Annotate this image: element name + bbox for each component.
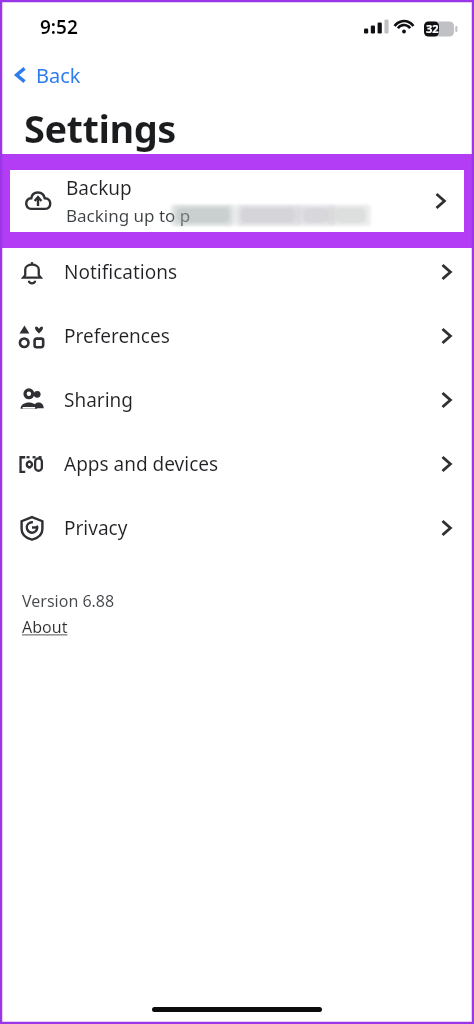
staticText: Sharing bbox=[64, 387, 418, 413]
staticText: Apps and devices bbox=[64, 451, 418, 477]
staticText: Backing up to p bbox=[66, 204, 191, 227]
button[interactable]: Notifications bbox=[0, 240, 474, 304]
other: Privacy bbox=[19, 515, 45, 541]
other: Notifications bbox=[19, 259, 45, 285]
button[interactable]: Privacy bbox=[0, 496, 474, 560]
button[interactable]: Preferences bbox=[0, 304, 474, 368]
button[interactable]: Backup bbox=[10, 170, 464, 232]
staticText: 32 bbox=[426, 21, 439, 36]
staticText: Notifications bbox=[64, 259, 418, 285]
staticText: Preferences bbox=[64, 323, 418, 349]
staticText: Back bbox=[36, 62, 81, 89]
button[interactable]: Apps and devices bbox=[0, 432, 474, 496]
button[interactable]: Back bbox=[10, 56, 110, 94]
staticText: 9:52 bbox=[40, 14, 78, 40]
other: Preferences bbox=[19, 323, 45, 349]
staticText: Backup bbox=[66, 175, 132, 201]
staticText: Version 6.88 bbox=[22, 590, 115, 612]
staticText: Settings bbox=[24, 102, 176, 154]
other: Sharing bbox=[19, 387, 45, 413]
staticText: Privacy bbox=[64, 515, 418, 541]
other: Apps and devices bbox=[19, 451, 45, 477]
button[interactable]: Sharing bbox=[0, 368, 474, 432]
staticText: About bbox=[22, 616, 68, 638]
button[interactable]: About bbox=[22, 616, 68, 638]
